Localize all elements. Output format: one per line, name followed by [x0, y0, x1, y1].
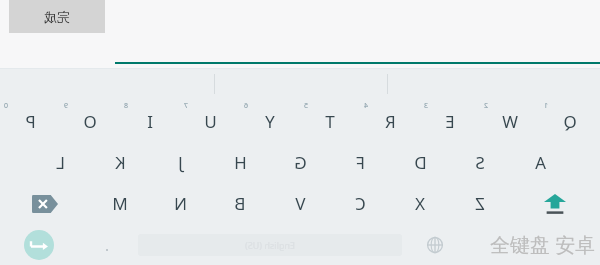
- staticText: W: [502, 110, 518, 133]
- staticText: 9: [63, 101, 68, 111]
- staticText: T: [325, 110, 335, 133]
- staticText: F: [356, 151, 365, 174]
- button[interactable]: O: [60, 100, 120, 142]
- staticText: B: [234, 192, 246, 215]
- staticText: U: [204, 110, 217, 133]
- staticText: E: [445, 110, 455, 133]
- staticText: S: [475, 151, 485, 174]
- staticText: C: [355, 192, 366, 215]
- staticText: O: [83, 110, 97, 133]
- button[interactable]: C: [330, 183, 390, 224]
- button[interactable]: K: [90, 142, 150, 183]
- button[interactable]: X: [390, 183, 450, 224]
- staticText: 7: [183, 101, 188, 111]
- staticText: K: [115, 151, 126, 174]
- staticText: I: [147, 110, 153, 133]
- staticText: Y: [265, 110, 275, 133]
- staticText: 5: [303, 101, 308, 111]
- button[interactable]: T: [300, 100, 360, 142]
- staticText: X: [415, 192, 425, 215]
- staticText: .: [105, 235, 110, 255]
- button[interactable]: P: [0, 100, 60, 142]
- staticText: 2: [483, 101, 488, 111]
- button[interactable]: Y: [240, 100, 300, 142]
- button[interactable]: L: [30, 142, 90, 183]
- staticText: A: [535, 151, 546, 174]
- staticText: Z: [475, 192, 485, 215]
- button[interactable]: B: [210, 183, 270, 224]
- button[interactable]: W: [480, 100, 540, 142]
- staticText: 1: [543, 101, 548, 111]
- staticText: R: [385, 110, 396, 133]
- staticText: V: [295, 192, 306, 215]
- button[interactable]: S: [450, 142, 510, 183]
- button[interactable]: I: [120, 100, 180, 142]
- button[interactable]: 完成: [9, 0, 105, 33]
- staticText: J: [178, 151, 183, 174]
- button[interactable]: F: [330, 142, 390, 183]
- button[interactable]: G: [270, 142, 330, 183]
- button[interactable]: U: [180, 100, 240, 142]
- button[interactable]: Z: [450, 183, 510, 224]
- button[interactable]: N: [150, 183, 210, 224]
- button[interactable]: H: [210, 142, 270, 183]
- staticText: L: [56, 151, 65, 174]
- button[interactable]: A: [510, 142, 570, 183]
- button[interactable]: Shift: [510, 183, 600, 224]
- staticText: 3: [423, 101, 428, 111]
- button[interactable]: V: [270, 183, 330, 224]
- staticText: D: [414, 151, 427, 174]
- button[interactable]: R: [360, 100, 420, 142]
- staticText: Q: [563, 110, 577, 133]
- staticText: H: [234, 151, 247, 174]
- staticText: 4: [363, 101, 368, 111]
- staticText: English (US): [245, 239, 295, 251]
- staticText: 完成: [44, 9, 70, 25]
- button[interactable]: M: [90, 183, 150, 224]
- staticText: 0: [3, 101, 8, 111]
- button[interactable]: J: [150, 142, 210, 183]
- staticText: M: [112, 192, 128, 215]
- button[interactable]: Change language: [402, 224, 468, 265]
- staticText: 8: [123, 101, 128, 111]
- staticText: N: [174, 192, 187, 215]
- staticText: P: [25, 110, 36, 133]
- staticText: G: [294, 151, 307, 174]
- button[interactable]: Enter: [0, 224, 77, 265]
- button[interactable]: Backspace: [0, 183, 90, 224]
- button[interactable]: E: [420, 100, 480, 142]
- staticText: 全键盘 安卓: [490, 231, 596, 258]
- staticText: 6: [243, 101, 248, 111]
- button[interactable]: Q: [540, 100, 600, 142]
- button[interactable]: D: [390, 142, 450, 183]
